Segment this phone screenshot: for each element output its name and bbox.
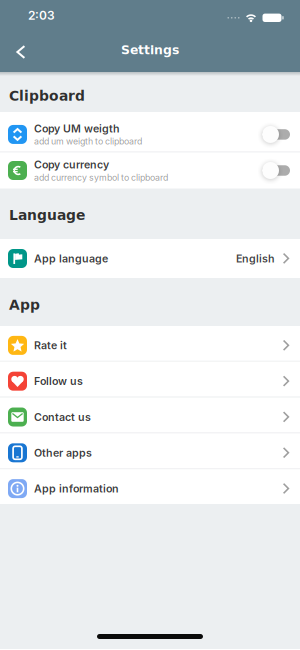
staticText: Language bbox=[9, 207, 85, 223]
staticText: Settings bbox=[121, 43, 179, 57]
button[interactable]: App language bbox=[0, 239, 300, 278]
staticText: add um weigth to clipboard bbox=[34, 136, 142, 147]
button[interactable]: Back bbox=[0, 35, 36, 69]
staticText: Copy currency bbox=[34, 158, 109, 171]
staticText: App language bbox=[34, 252, 108, 265]
staticText: Rate it bbox=[34, 339, 67, 352]
staticText: Other apps bbox=[34, 446, 92, 459]
staticText: Clipboard bbox=[9, 88, 85, 104]
staticText: English bbox=[236, 252, 275, 265]
staticText: 2:03 bbox=[28, 8, 55, 23]
button[interactable]: Rate it bbox=[0, 326, 300, 361]
staticText: App bbox=[9, 297, 40, 313]
button[interactable]: Other apps bbox=[0, 433, 300, 468]
staticText: Follow us bbox=[34, 375, 83, 388]
staticText: App information bbox=[34, 482, 119, 495]
button[interactable]: Contact us bbox=[0, 398, 300, 432]
staticText: Contact us bbox=[34, 410, 91, 423]
button[interactable]: Copy currency bbox=[262, 162, 290, 179]
staticText: add currency symbol to clipboard bbox=[34, 172, 168, 183]
button[interactable]: Copy UM weigth bbox=[262, 126, 290, 143]
button[interactable]: App information bbox=[0, 469, 300, 504]
staticText: Copy UM weigth bbox=[34, 122, 120, 135]
button[interactable]: Follow us bbox=[0, 362, 300, 397]
